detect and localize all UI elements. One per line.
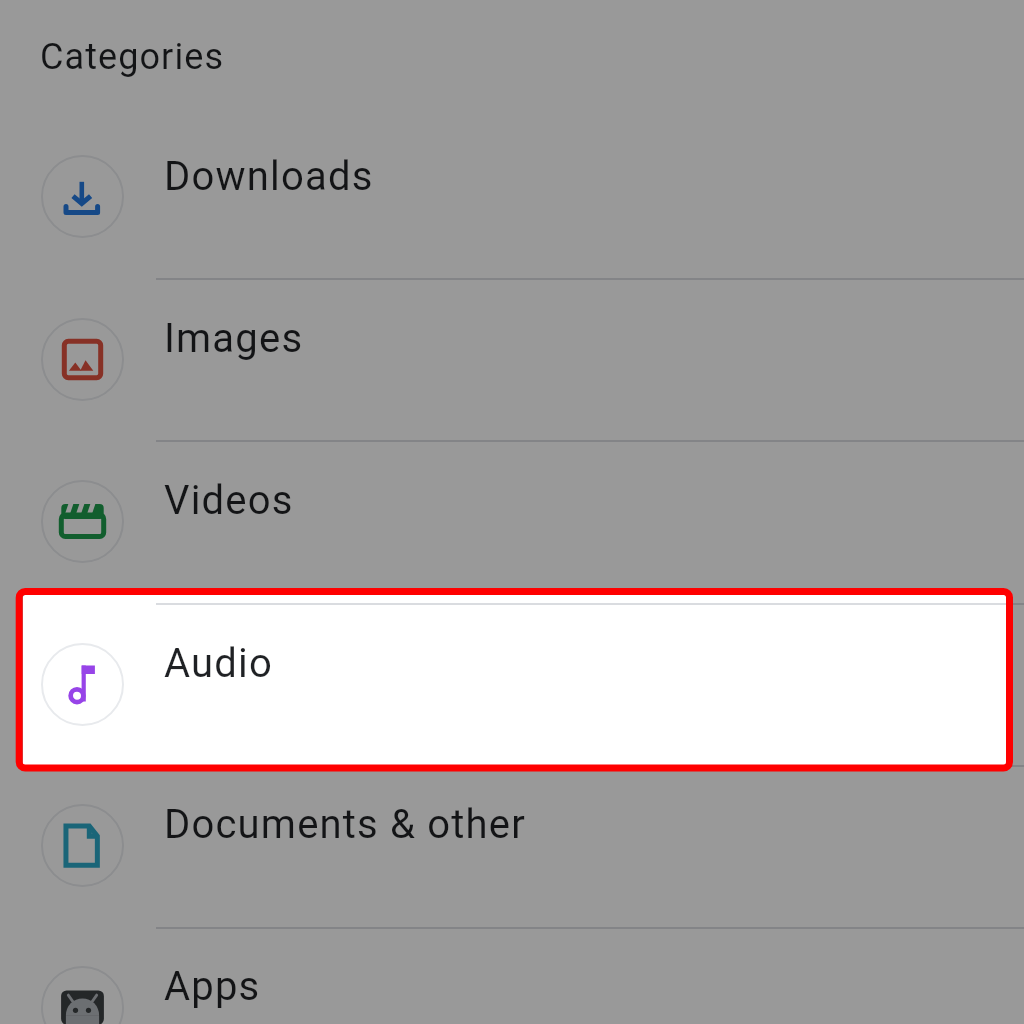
staticText: Audio <box>164 639 274 686</box>
button[interactable]: Images <box>0 278 1024 440</box>
staticText: Videos <box>164 477 294 524</box>
button[interactable]: Audio <box>0 602 1024 764</box>
button[interactable]: Downloads <box>0 116 1024 278</box>
staticText: Downloads <box>164 153 374 200</box>
staticText: Categories <box>40 36 225 78</box>
button[interactable]: Apps <box>0 926 1024 1024</box>
button[interactable]: Documents & other <box>0 764 1024 926</box>
staticText: Apps <box>164 963 261 1010</box>
staticText: Audio <box>164 640 274 687</box>
button[interactable]: Videos <box>0 440 1024 602</box>
staticText: Images <box>164 315 304 362</box>
staticText: Documents & other <box>164 801 526 848</box>
